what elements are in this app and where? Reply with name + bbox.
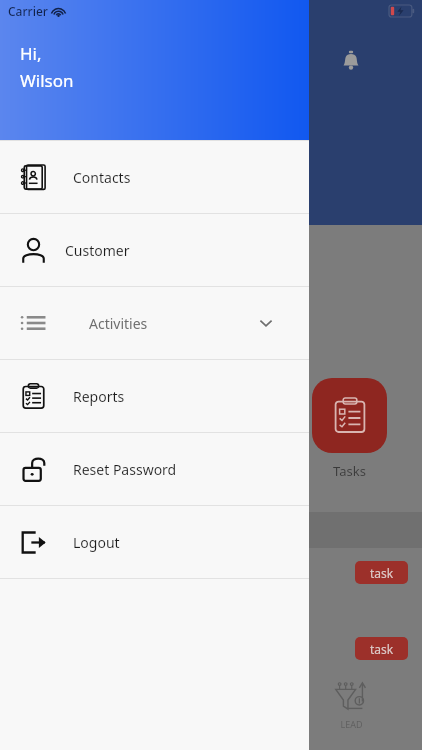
button[interactable]: Reports [0, 360, 309, 432]
other: Reset Password [20, 456, 47, 483]
staticText: Logout [73, 533, 120, 552]
other: Contacts [19, 163, 48, 192]
staticText: Reset Password [73, 460, 177, 479]
other: Lead [332, 678, 370, 716]
button[interactable]: Customer [0, 214, 309, 286]
other: Notifications [340, 50, 362, 72]
staticText: Wilson [20, 69, 74, 92]
button[interactable]: task [355, 637, 408, 660]
staticText: task [370, 641, 394, 657]
other: Customer [20, 237, 47, 264]
staticText: 2:06 PM [188, 3, 234, 19]
staticText: Tasks [333, 462, 366, 480]
button[interactable]: Reset Password [0, 433, 309, 505]
staticText: Reports [73, 387, 125, 406]
staticText: 0 AED [56, 200, 95, 219]
staticText: task [370, 565, 394, 581]
button[interactable]: Tasks [312, 378, 387, 480]
staticText: Customer [65, 241, 130, 260]
staticText: Contacts [73, 168, 131, 187]
other: Activities [20, 310, 46, 336]
other: Reports [20, 383, 47, 410]
staticText: Hi, [20, 42, 42, 65]
button[interactable]: Contacts [0, 141, 309, 213]
button[interactable]: task [355, 561, 408, 584]
staticText: Carrier [8, 3, 48, 19]
other: Logout [20, 529, 47, 556]
button[interactable]: Logout [0, 506, 309, 578]
staticText: LEAD [340, 718, 363, 730]
button[interactable]: Activities [0, 287, 309, 359]
staticText: Activities [89, 314, 148, 333]
